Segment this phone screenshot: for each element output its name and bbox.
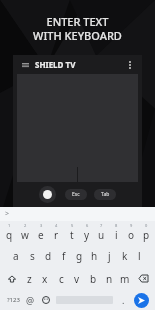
staticText: s [30,249,35,263]
button[interactable]: d [40,244,56,267]
staticText: 8 [115,223,118,228]
staticText: 1 [8,223,11,228]
staticText: w [21,228,29,242]
staticText: o [128,228,135,242]
staticText: c [59,272,64,286]
staticText: i [115,228,118,242]
button[interactable]: 8 [109,221,124,244]
button[interactable]: k [117,244,132,267]
button[interactable]: 7 [94,221,109,244]
button[interactable]: Send [131,290,152,310]
staticText: z [27,272,32,286]
button[interactable]: f [56,244,72,267]
staticText: m [120,272,130,286]
button[interactable]: More options [123,58,137,72]
button[interactable]: 6 [79,221,94,244]
staticText: e [38,228,44,242]
staticText: b [90,272,97,286]
staticText: 0 [145,223,148,228]
button[interactable]: m [117,267,133,290]
button[interactable]: 5 [64,221,79,244]
button[interactable]: 3 [33,221,49,244]
staticText: f [62,249,66,263]
button[interactable]: Select [39,186,56,203]
button[interactable]: Menu [18,58,32,72]
button[interactable]: Emoji [38,290,53,310]
staticText: Tab [101,191,110,198]
staticText: ENTER TEXT WITH KEYBOARD [0,14,155,43]
staticText: j [108,249,111,263]
button[interactable]: 2 [17,221,33,244]
button[interactable]: b [85,267,101,290]
button[interactable]: 4 [49,221,64,244]
staticText: v [74,272,80,286]
button[interactable]: j [102,244,117,267]
button[interactable]: Tab [94,189,116,200]
button[interactable]: Backspace [133,267,153,290]
button[interactable]: h [87,244,102,267]
staticText: 4 [55,223,58,228]
staticText: l [138,249,141,263]
button[interactable]: 0 [139,221,154,244]
staticText: > [5,209,10,219]
button[interactable]: v [69,267,85,290]
staticText: h [91,249,98,263]
staticText: . [122,294,125,306]
staticText: 7 [100,223,103,228]
staticText: t [70,228,74,242]
staticText: x [42,272,48,286]
staticText: n [106,272,113,286]
staticText: d [45,249,52,263]
button[interactable]: ?123 [3,290,23,310]
button[interactable]: 9 [124,221,139,244]
staticText: 6 [86,223,89,228]
staticText: a [13,249,19,263]
staticText: 9 [130,223,133,228]
staticText: 2 [24,223,27,228]
button[interactable]: g [72,244,87,267]
button[interactable]: c [53,267,69,290]
staticText: k [122,249,128,263]
staticText: ?123 [7,296,20,304]
button[interactable]: Shift [2,267,21,290]
staticText: r [54,228,59,242]
button[interactable]: s [24,244,40,267]
staticText: u [98,228,105,242]
button[interactable]: n [101,267,117,290]
staticText: 5 [71,223,74,228]
staticText: q [6,228,13,242]
button[interactable]: x [37,267,53,290]
staticText: SHIELD TV [35,59,76,70]
staticText: g [76,249,83,263]
staticText: @ [26,294,35,306]
button[interactable]: @ [23,290,38,310]
staticText: 3 [40,223,43,228]
button[interactable]: a [8,244,24,267]
button[interactable]: z [21,267,37,290]
button[interactable]: . [116,290,131,310]
button[interactable]: 1 [1,221,17,244]
staticText: y [84,228,90,242]
button[interactable]: Esc [65,189,87,200]
staticText: p [143,228,150,242]
button[interactable]: l [132,244,147,267]
staticText: Esc [72,191,80,198]
